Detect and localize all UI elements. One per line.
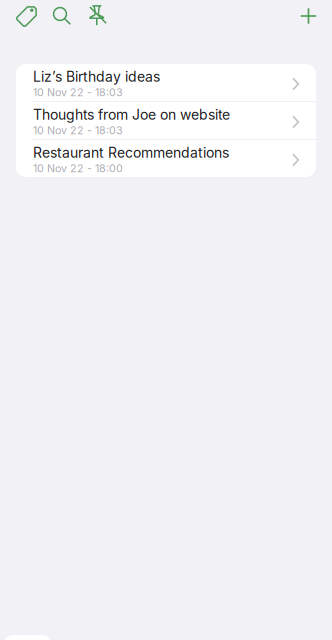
staticText: Thoughts from Joe on website (33, 106, 230, 123)
button[interactable]: Hide pinned notes (84, 0, 112, 31)
button[interactable]: Compose (4, 635, 51, 640)
button[interactable]: Thoughts from Joe on website (16, 102, 316, 139)
staticText: Liz’s Birthday ideas (33, 68, 160, 85)
staticText: 10 Nov 22 - 18:03 (33, 86, 123, 99)
button[interactable]: Search (47, 1, 76, 30)
button[interactable]: Tags (10, 0, 42, 32)
staticText: Restaurant Recommendations (33, 144, 229, 161)
staticText: 10 Nov 22 - 18:00 (33, 162, 123, 175)
button[interactable]: New note (295, 2, 322, 29)
button[interactable]: Liz’s Birthday ideas (16, 64, 316, 101)
button[interactable]: Restaurant Recommendations (16, 140, 316, 177)
staticText: 10 Nov 22 - 18:03 (33, 124, 123, 137)
